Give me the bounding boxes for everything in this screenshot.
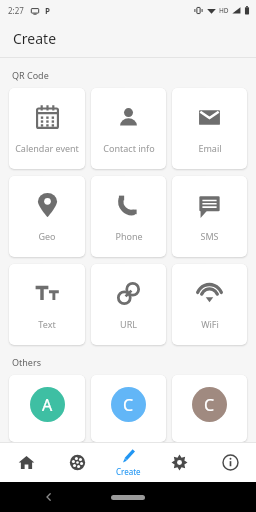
staticText: Create bbox=[116, 466, 141, 477]
staticText: Create bbox=[13, 29, 57, 48]
staticText: Geo bbox=[38, 230, 56, 242]
staticText: P bbox=[45, 5, 50, 16]
button[interactable]: A bbox=[9, 375, 85, 442]
staticText: SMS bbox=[200, 230, 219, 242]
staticText: C bbox=[123, 394, 134, 416]
staticText: Others bbox=[12, 356, 41, 368]
button[interactable]: URL bbox=[91, 264, 166, 345]
button[interactable]: Home bbox=[0, 443, 52, 482]
staticText: 2:27 bbox=[8, 5, 24, 16]
button[interactable]: Geo bbox=[9, 176, 85, 257]
staticText: QR Code bbox=[12, 69, 49, 81]
staticText: Phone bbox=[115, 230, 143, 242]
button[interactable]: Scan bbox=[52, 443, 103, 482]
staticText: WiFi bbox=[201, 318, 219, 330]
button[interactable]: C bbox=[172, 375, 247, 442]
button[interactable]: Settings bbox=[154, 443, 205, 482]
staticText: C bbox=[204, 394, 215, 416]
staticText: Contact info bbox=[103, 142, 155, 154]
button[interactable]: Contact info bbox=[91, 88, 166, 169]
button[interactable]: Text bbox=[9, 264, 85, 345]
button[interactable]: SMS bbox=[172, 176, 247, 257]
staticText: A bbox=[42, 394, 53, 416]
button[interactable]: Email bbox=[172, 88, 247, 169]
button[interactable]: C bbox=[91, 375, 166, 442]
staticText: HD bbox=[219, 6, 229, 15]
button[interactable]: Info bbox=[205, 443, 256, 482]
staticText: Email bbox=[198, 142, 222, 154]
button[interactable]: WiFi bbox=[172, 264, 247, 345]
staticText: URL bbox=[120, 318, 137, 330]
staticText: Calendar event bbox=[15, 142, 79, 154]
staticText: Text bbox=[38, 318, 56, 330]
button[interactable]: Phone bbox=[91, 176, 166, 257]
button[interactable]: Calendar event bbox=[9, 88, 85, 169]
button[interactable]: Create bbox=[103, 443, 154, 482]
